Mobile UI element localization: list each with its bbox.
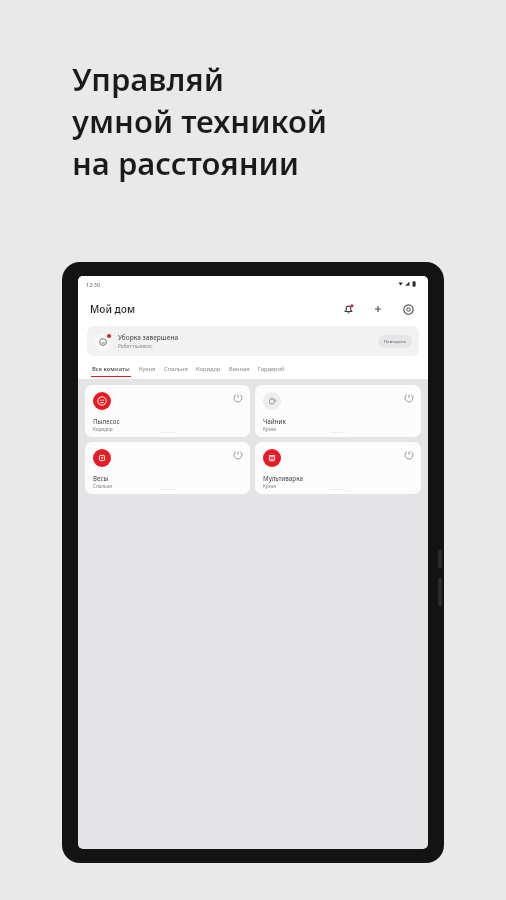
button[interactable]: Весы bbox=[85, 442, 250, 494]
button[interactable]: Гардероб bbox=[254, 365, 289, 377]
staticText: Кухня bbox=[263, 426, 276, 432]
staticText: Управляй bbox=[72, 58, 225, 100]
button[interactable]: Питание Пылесос bbox=[232, 392, 243, 403]
staticText: Мультиварка bbox=[263, 474, 304, 482]
staticText: Пылесос bbox=[93, 417, 120, 425]
staticText: Уборка завершена bbox=[118, 333, 179, 342]
button[interactable]: Чайник bbox=[255, 385, 421, 437]
staticText: умной техникой bbox=[72, 100, 328, 142]
staticText: Повторить bbox=[384, 339, 407, 345]
button[interactable]: Коридор bbox=[192, 365, 225, 377]
staticText: Кухня bbox=[263, 483, 276, 489]
button[interactable]: Мультиварка bbox=[255, 442, 421, 494]
button[interactable]: Повторить bbox=[378, 335, 412, 348]
button[interactable]: Пылесос bbox=[85, 385, 250, 437]
staticText: Робот-пылесос bbox=[118, 343, 153, 350]
staticText: Спальня bbox=[164, 365, 188, 373]
staticText: Спальня bbox=[93, 483, 112, 489]
button[interactable]: Питание Весы bbox=[232, 449, 243, 460]
staticText: Все комнаты bbox=[92, 365, 130, 373]
staticText: Чайник bbox=[263, 417, 286, 425]
staticText: Кухня bbox=[139, 365, 156, 373]
button[interactable]: Спальня bbox=[160, 365, 192, 377]
button[interactable]: Питание Мультиварка bbox=[403, 449, 414, 460]
button[interactable]: Уборка завершена bbox=[87, 326, 419, 356]
button[interactable]: Уведомления bbox=[338, 299, 358, 319]
button[interactable]: Добавить bbox=[368, 299, 388, 319]
staticText: Ванная bbox=[229, 365, 250, 373]
staticText: на расстоянии bbox=[72, 142, 300, 184]
staticText: Гардероб bbox=[258, 365, 285, 373]
button[interactable]: Питание Чайник bbox=[403, 392, 414, 403]
button[interactable]: Настройки bbox=[398, 299, 418, 319]
staticText: Коридор bbox=[196, 365, 221, 373]
staticText: Мой дом bbox=[90, 302, 136, 316]
button[interactable]: Ванная bbox=[225, 365, 254, 377]
button[interactable]: Все комнаты bbox=[87, 365, 135, 377]
button[interactable]: Кухня bbox=[135, 365, 160, 377]
staticText: Весы bbox=[93, 474, 109, 482]
staticText: 12:30 bbox=[86, 281, 101, 288]
staticText: Коридор bbox=[93, 426, 113, 432]
